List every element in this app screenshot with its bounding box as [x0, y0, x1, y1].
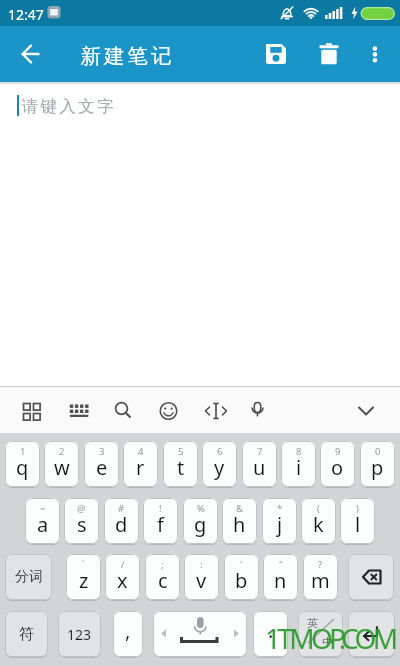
staticText: t	[177, 454, 185, 481]
button[interactable]: 6	[202, 441, 237, 487]
staticText: 123	[67, 625, 92, 644]
staticText: l	[355, 511, 361, 538]
staticText: f	[157, 511, 164, 538]
staticText: 0	[375, 445, 381, 458]
button[interactable]: *	[262, 498, 297, 544]
button[interactable]: 2	[44, 441, 79, 487]
staticText: h	[233, 511, 246, 538]
staticText: g	[194, 511, 207, 538]
staticText: v	[196, 567, 207, 594]
button[interactable]	[256, 34, 296, 74]
button[interactable]	[355, 34, 395, 74]
button[interactable]: `	[66, 554, 101, 600]
staticText: /	[121, 558, 125, 571]
button[interactable]: %	[183, 498, 218, 544]
staticText: 2	[59, 445, 65, 458]
staticText: o	[331, 454, 344, 481]
staticText: w	[54, 454, 70, 481]
staticText: 4	[138, 445, 144, 458]
staticText: n	[274, 567, 287, 594]
staticText: %	[197, 502, 205, 515]
staticText: u	[253, 454, 266, 481]
button[interactable]: 分词	[5, 554, 52, 600]
staticText: :	[200, 558, 203, 571]
button[interactable]: ,	[113, 611, 143, 657]
button[interactable]: #	[104, 498, 139, 544]
button[interactable]	[238, 387, 278, 433]
staticText: .	[268, 617, 274, 644]
staticText: )	[356, 502, 359, 515]
staticText: s	[77, 511, 87, 538]
staticText: r	[136, 454, 145, 481]
staticText: y	[214, 454, 225, 481]
button[interactable]: 英	[298, 611, 343, 657]
staticText: 英	[307, 616, 318, 630]
staticText: j	[277, 511, 283, 538]
staticText: 请键入文字	[20, 96, 115, 117]
staticText: 1TMOP.COM	[265, 619, 395, 657]
staticText: 8	[296, 445, 302, 458]
button[interactable]	[308, 34, 348, 74]
staticText: 3	[99, 445, 105, 458]
button[interactable]	[11, 34, 51, 74]
button[interactable]	[153, 611, 247, 657]
staticText: a	[37, 511, 49, 538]
button[interactable]	[346, 387, 386, 433]
button[interactable]: 符	[5, 611, 48, 657]
button[interactable]: (	[301, 498, 336, 544]
staticText: "	[279, 558, 283, 571]
staticText: 符	[19, 625, 34, 644]
staticText: ~	[40, 502, 46, 515]
button[interactable]: 5	[163, 441, 198, 487]
staticText: !	[159, 502, 162, 515]
staticText: ;	[161, 558, 164, 571]
staticText: e	[96, 454, 108, 481]
button[interactable]: 8	[281, 441, 316, 487]
button[interactable]: @	[64, 498, 99, 544]
button[interactable]: ?	[303, 554, 338, 600]
button[interactable]	[102, 387, 142, 433]
button[interactable]: 1	[5, 441, 40, 487]
staticText: 中	[322, 635, 333, 649]
button[interactable]: &	[222, 498, 257, 544]
button[interactable]	[56, 387, 96, 433]
button[interactable]: 0	[360, 441, 395, 487]
button[interactable]: .	[253, 611, 288, 657]
staticText: i	[296, 454, 302, 481]
button[interactable]: ~	[25, 498, 60, 544]
staticText: 新建笔记	[79, 43, 173, 69]
button[interactable]	[196, 387, 236, 433]
staticText: 7	[257, 445, 263, 458]
button[interactable]: 9	[320, 441, 355, 487]
staticText: @	[77, 502, 86, 515]
staticText: c	[158, 567, 168, 594]
button[interactable]: "	[263, 554, 298, 600]
staticText: ,	[125, 617, 131, 644]
staticText: k	[313, 511, 324, 538]
button[interactable]: 4	[123, 441, 158, 487]
button[interactable]: 7	[242, 441, 277, 487]
button[interactable]: !	[143, 498, 178, 544]
staticText: 5	[178, 445, 184, 458]
button[interactable]: 123	[58, 611, 101, 657]
button[interactable]: 请键入文字	[0, 82, 400, 386]
button[interactable]: :	[184, 554, 219, 600]
staticText: q	[16, 454, 29, 481]
staticText: *	[277, 502, 283, 515]
staticText: p	[371, 454, 384, 481]
staticText: 12:47	[8, 5, 44, 24]
button[interactable]	[348, 611, 395, 657]
button[interactable]	[148, 387, 188, 433]
button[interactable]	[348, 554, 394, 600]
staticText: 分词	[15, 568, 43, 586]
button[interactable]: '	[224, 554, 259, 600]
button[interactable]: ;	[145, 554, 180, 600]
button[interactable]	[12, 387, 52, 433]
staticText: #	[118, 502, 125, 515]
staticText: '	[240, 558, 243, 571]
button[interactable]: /	[105, 554, 140, 600]
button[interactable]: 3	[84, 441, 119, 487]
staticText: b	[235, 567, 248, 594]
button[interactable]: )	[340, 498, 375, 544]
staticText: (	[317, 502, 320, 515]
